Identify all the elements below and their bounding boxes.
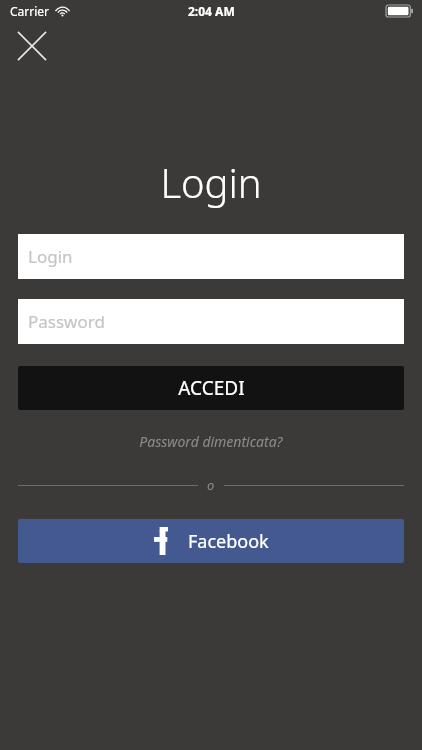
button[interactable]: Password [18,299,404,344]
staticText: Login [28,245,73,268]
button[interactable]: ACCEDI [18,366,404,410]
button[interactable]: Password dimenticata? [18,432,404,451]
staticText: o [207,476,215,494]
button[interactable]: Close [16,30,48,62]
staticText: Carrier [10,3,50,19]
button[interactable]: Login [18,234,404,279]
staticText: ACCEDI [178,375,245,401]
staticText: 2:04 AM [188,3,235,19]
staticText: Login [160,155,262,209]
staticText: Facebook [188,529,269,554]
button[interactable]: Facebook [18,519,404,563]
staticText: Password dimenticata? [139,432,283,451]
staticText: Password [28,310,105,333]
